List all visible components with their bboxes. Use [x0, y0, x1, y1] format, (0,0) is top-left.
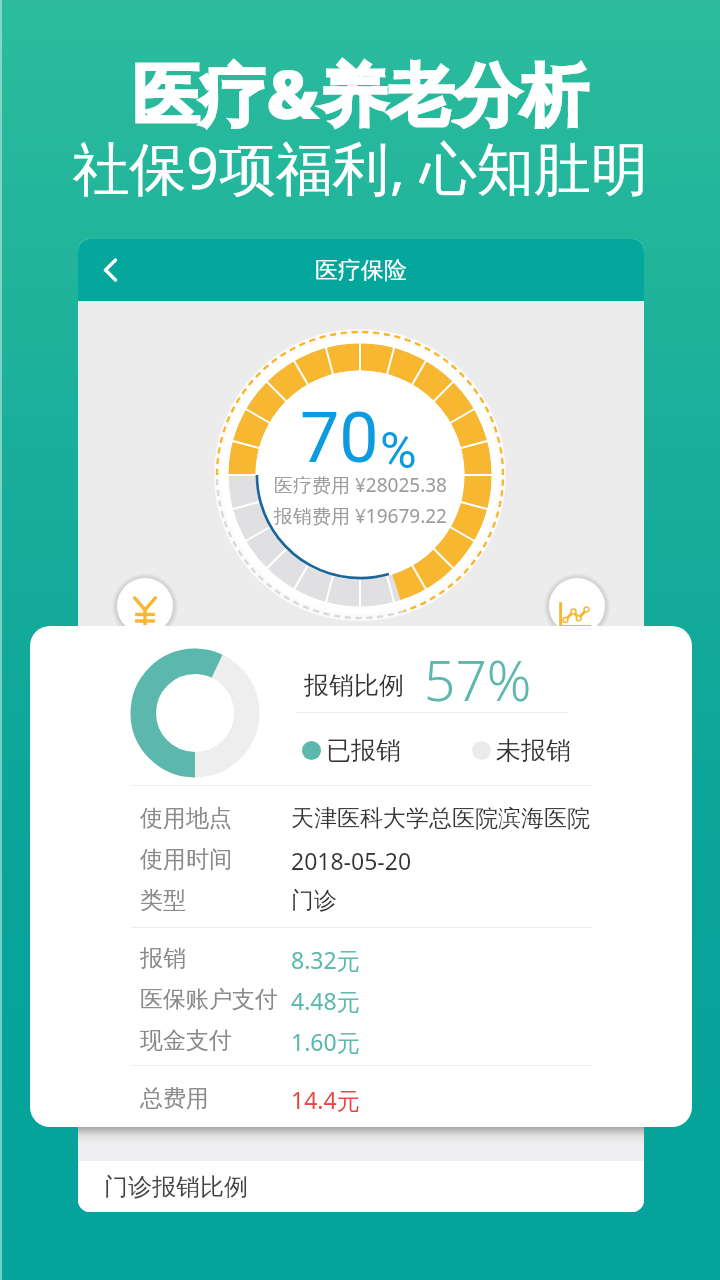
staticText: 门诊报销比例	[104, 1172, 248, 1202]
staticText: 医疗&养老分析	[132, 47, 588, 139]
staticText: 报销比例	[304, 670, 404, 701]
button[interactable]: Statistics	[543, 572, 611, 640]
staticText: 70	[300, 397, 379, 479]
staticText: 已报销	[326, 735, 401, 766]
staticText: 4.48元	[291, 985, 360, 1016]
button[interactable]: Expenses	[111, 572, 179, 640]
button[interactable]: Back	[86, 246, 134, 294]
staticText: 8.32元	[291, 944, 360, 975]
staticText: 医疗保险	[315, 256, 407, 285]
staticText: 2018-05-20	[291, 845, 412, 876]
staticText: 报销	[140, 944, 186, 973]
staticText: 未报销	[496, 735, 571, 766]
staticText: 总费用	[140, 1084, 209, 1113]
staticText: 14.4元	[291, 1084, 360, 1115]
staticText: 类型	[140, 886, 186, 915]
staticText: 1.60元	[291, 1026, 360, 1057]
staticText: 社保9项福利, 心知肚明	[72, 128, 648, 206]
staticText: 门诊	[291, 886, 337, 915]
staticText: 天津医科大学总医院滨海医院	[291, 804, 590, 833]
staticText: %	[380, 422, 417, 481]
staticText: 57%	[424, 642, 532, 717]
staticText: 医疗费用 ¥28025.38	[274, 472, 447, 498]
staticText: 使用时间	[140, 845, 232, 874]
staticText: 报销费用 ¥19679.22	[274, 503, 447, 529]
staticText: 使用地点	[140, 804, 232, 833]
staticText: 现金支付	[140, 1026, 232, 1055]
staticText: 医保账户支付	[140, 985, 278, 1014]
